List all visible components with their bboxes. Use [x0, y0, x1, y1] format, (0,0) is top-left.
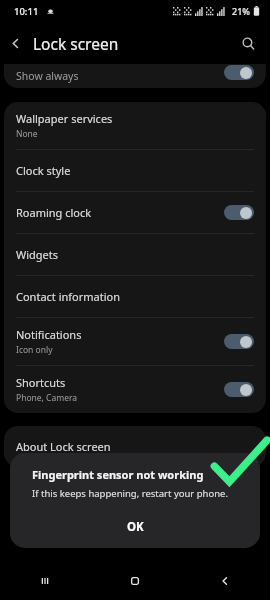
staticText: Fingerprint sensor not working [32, 467, 204, 482]
button[interactable]: About Lock screen [4, 426, 266, 467]
button[interactable]: Widgets [4, 234, 266, 275]
staticText: Clock style [16, 163, 71, 178]
button[interactable]: Back [0, 28, 30, 58]
button[interactable]: Wallpaper services [4, 102, 266, 149]
staticText: Roaming clock [16, 205, 92, 220]
button[interactable]: Notifications [4, 318, 266, 365]
staticText: Widgets [16, 247, 59, 262]
button[interactable]: Toggle [224, 382, 254, 397]
button[interactable]: Contact information [4, 276, 266, 317]
staticText: Icon only [16, 344, 53, 356]
button[interactable]: Shortcuts [4, 366, 266, 413]
button[interactable]: Toggle [224, 334, 254, 349]
button[interactable]: Roaming clock [4, 192, 266, 233]
staticText: Show always [16, 69, 224, 83]
staticText: 21% [232, 5, 250, 17]
staticText: If this keeps happening, restart your ph… [32, 487, 228, 500]
button[interactable]: Home [90, 562, 180, 600]
button[interactable]: Show always [4, 64, 266, 88]
staticText: Wallpaper services [16, 111, 113, 126]
staticText: Lock screen [33, 33, 119, 54]
staticText: OK [127, 519, 144, 535]
staticText: About Lock screen [16, 439, 111, 454]
button[interactable]: OK [10, 512, 260, 542]
staticText: 10:11 [14, 5, 39, 18]
button[interactable]: Search [234, 29, 262, 57]
button[interactable]: Recents [0, 562, 90, 600]
button[interactable]: Back [180, 562, 270, 600]
button[interactable]: Toggle [224, 65, 254, 80]
staticText: Contact information [16, 289, 120, 304]
staticText: Phone, Camera [16, 392, 78, 404]
button[interactable]: Clock style [4, 150, 266, 191]
button[interactable]: Toggle [224, 205, 254, 220]
staticText: None [16, 128, 38, 140]
staticText: Notifications [16, 327, 82, 342]
staticText: Shortcuts [16, 375, 66, 390]
